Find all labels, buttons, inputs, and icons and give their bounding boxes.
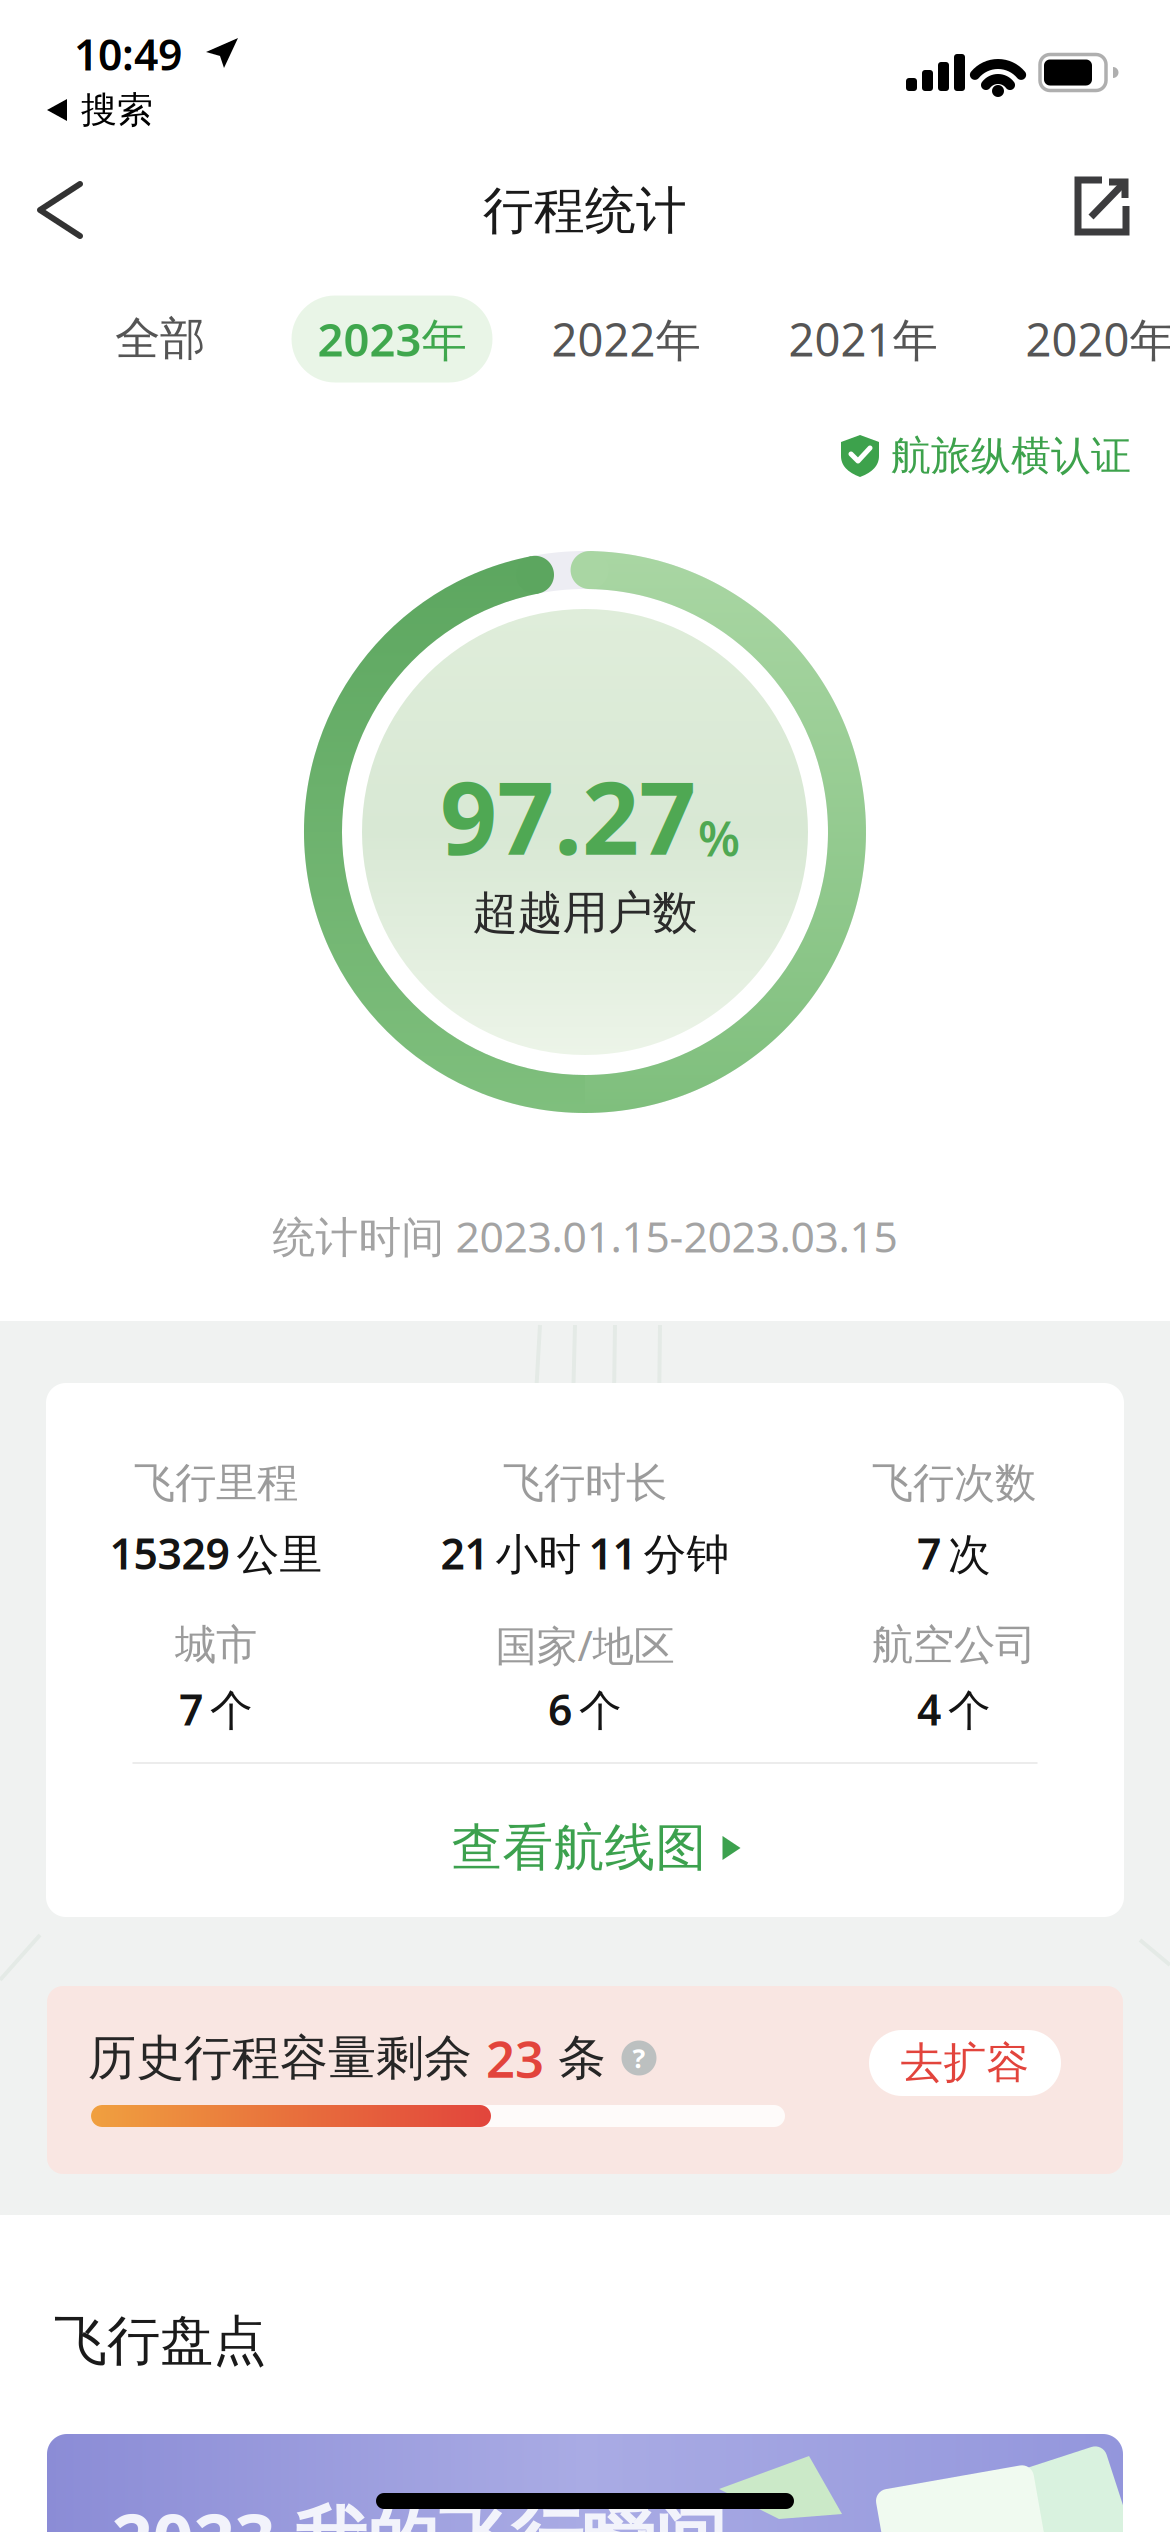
staticText: 行程统计 [483,180,687,242]
button[interactable]: ? [620,2039,658,2077]
staticText: 全部 [115,311,205,367]
staticText: 23 [486,2024,544,2092]
staticText: 15329 公里 [109,1525,322,1581]
button[interactable]: 2021年 [788,295,937,382]
button[interactable]: 2023年 [291,295,492,382]
staticText: 航空公司 [872,1620,1036,1670]
staticText: 21 小时 11 分钟 [440,1525,729,1581]
staticText: 国家/地区 [495,1618,674,1672]
staticText: 2021年 [788,309,937,369]
button[interactable]: 2022年 [551,295,700,382]
staticText: 2023 我的飞行瞬间 [111,2490,726,2532]
button[interactable]: 全部 [115,295,205,382]
staticText: 城市 [175,1620,257,1670]
staticText: 2023年 [317,309,466,369]
staticText: 6 个 [548,1681,622,1737]
staticText: 飞行时长 [503,1458,667,1508]
staticText: ? [632,2040,645,2076]
button[interactable] [30,176,94,244]
staticText: 历史行程容量剩余 [88,2028,472,2087]
button[interactable]: 搜索 [7,86,187,134]
staticText: 97.27 [440,750,696,882]
staticText: 去扩容 [900,2037,1029,2089]
staticText: 统计时间 2023.01.15-2023.03.15 [272,1208,897,1264]
button[interactable]: 2023 我的飞行瞬间 [47,2434,1123,2532]
staticText: 2022年 [551,309,700,369]
button[interactable]: 航旅纵横认证 [839,431,1131,481]
button[interactable]: 2020年 [1025,295,1170,382]
button[interactable]: 查看航线图 [451,1818,742,1878]
staticText: 查看航线图 [451,1817,706,1879]
staticText: 飞行次数 [872,1458,1036,1508]
staticText: 4 个 [917,1681,991,1737]
staticText: 超越用户数 [472,885,697,941]
staticText: 7 个 [179,1681,253,1737]
staticText: 飞行里程 [134,1458,298,1508]
staticText: 7 次 [917,1525,991,1581]
staticText: 条 [558,2028,606,2087]
staticText: 航旅纵横认证 [891,431,1131,480]
staticText: 飞行盘点 [54,2308,266,2374]
staticText: % [698,806,740,870]
staticText: 搜索 [81,88,153,132]
button[interactable] [1066,172,1136,242]
staticText: 2020年 [1025,309,1170,369]
staticText: 10:49 [74,26,182,82]
button[interactable]: 去扩容 [869,2030,1061,2096]
